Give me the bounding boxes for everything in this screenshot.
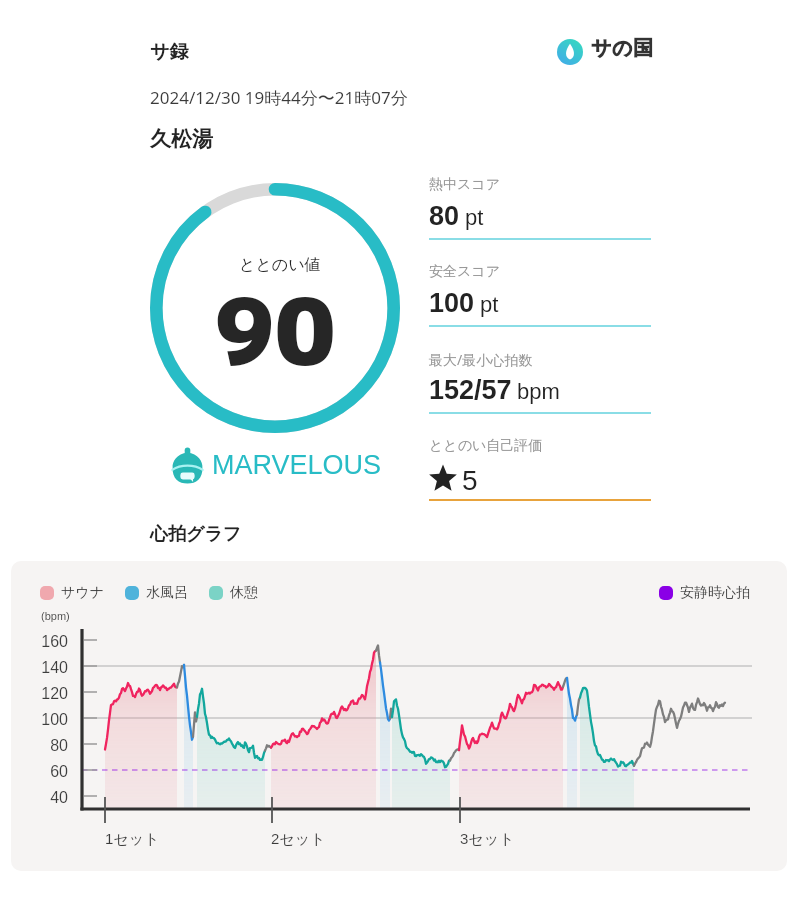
staticText: 60 bbox=[20, 763, 68, 781]
staticText: 160 bbox=[20, 633, 68, 651]
button[interactable]: 安静時心拍 bbox=[659, 584, 750, 602]
button[interactable]: サの国 bbox=[557, 39, 654, 65]
staticText: 5 bbox=[462, 465, 478, 496]
staticText: 140 bbox=[20, 659, 68, 677]
staticText: ととのい自己評価 bbox=[429, 437, 543, 455]
staticText: サの国 bbox=[591, 36, 654, 61]
staticText: pt bbox=[480, 292, 499, 317]
staticText: ととのい値 bbox=[239, 255, 321, 275]
staticText: bpm bbox=[517, 379, 560, 404]
staticText: 1セット bbox=[105, 830, 160, 849]
staticText: (bpm) bbox=[41, 610, 70, 622]
staticText: サ録 bbox=[150, 40, 189, 64]
button[interactable]: 熱中スコア bbox=[429, 176, 651, 246]
staticText: MARVELOUS bbox=[212, 450, 382, 480]
staticText: 40 bbox=[20, 789, 68, 807]
button[interactable]: 最大/最小心拍数 bbox=[429, 350, 651, 420]
staticText: 80 bbox=[429, 201, 460, 231]
staticText: 最大/最小心拍数 bbox=[429, 350, 533, 369]
staticText: 休憩 bbox=[230, 584, 258, 602]
button[interactable]: 休憩 bbox=[209, 584, 258, 602]
staticText: 3セット bbox=[460, 830, 515, 849]
button[interactable]: 水風呂 bbox=[125, 584, 188, 602]
staticText: pt bbox=[465, 205, 484, 230]
staticText: 熱中スコア bbox=[429, 176, 500, 194]
staticText: 100 bbox=[429, 288, 475, 318]
button[interactable]: 安全スコア bbox=[429, 263, 651, 333]
staticText: 2セット bbox=[271, 830, 326, 849]
staticText: 安静時心拍 bbox=[680, 584, 750, 602]
staticText: 120 bbox=[20, 685, 68, 703]
staticText: 安全スコア bbox=[429, 263, 500, 281]
staticText: サウナ bbox=[61, 584, 104, 602]
button[interactable]: MARVELOUS bbox=[172, 446, 382, 484]
staticText: 100 bbox=[20, 711, 68, 729]
staticText: 2024/12/30 19時44分〜21時07分 bbox=[150, 86, 408, 109]
staticText: 水風呂 bbox=[146, 584, 188, 602]
staticText: 久松湯 bbox=[150, 126, 213, 152]
button[interactable]: サウナ bbox=[40, 584, 104, 602]
staticText: 152/57 bbox=[429, 375, 512, 405]
staticText: 80 bbox=[20, 737, 68, 755]
button[interactable]: ととのい自己評価 bbox=[429, 437, 651, 507]
staticText: 心拍グラフ bbox=[150, 523, 242, 546]
staticText: 90 bbox=[214, 267, 336, 395]
